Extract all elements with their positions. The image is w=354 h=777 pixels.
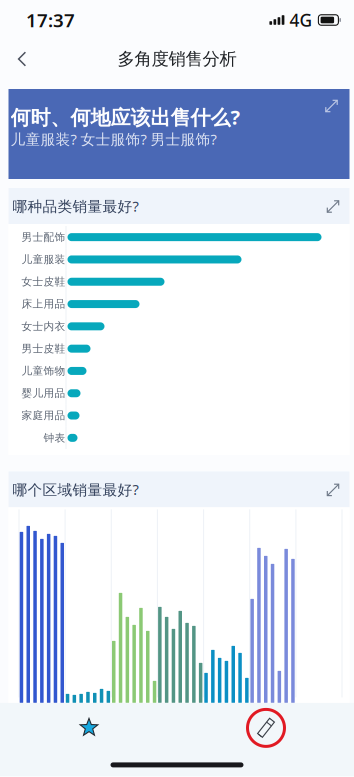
staticText: 家庭用品	[21, 409, 65, 422]
button[interactable]: Back	[0, 40, 44, 78]
button[interactable]: Edit	[178, 706, 354, 750]
staticText: 何时、何地应该出售什么?	[10, 104, 240, 130]
staticText: 多角度销售分析	[117, 48, 236, 70]
button[interactable]: Expand chart	[313, 89, 349, 123]
staticText: 男士配饰	[21, 231, 65, 244]
staticText: 床上用品	[21, 297, 65, 311]
staticText: 婴儿用品	[21, 387, 65, 400]
staticText: 哪种品类销量最好?	[12, 196, 138, 216]
staticText: 钟表	[43, 431, 65, 444]
staticText: 4G	[289, 8, 312, 31]
staticText: 儿童饰物	[21, 364, 65, 377]
staticText: 男士皮鞋	[21, 342, 65, 355]
button[interactable]: Expand 哪种品类销量最好?	[315, 188, 349, 224]
staticText: 儿童服装? 女士服饰? 男士服饰?	[10, 129, 216, 149]
staticText: 哪个区域销量最好?	[12, 480, 138, 499]
staticText: 17:37	[26, 8, 75, 32]
button[interactable]: Expand 哪个区域销量最好?	[315, 471, 349, 507]
button[interactable]: Favorites	[0, 706, 178, 750]
staticText: 女士皮鞋	[21, 275, 65, 288]
staticText: 女士内衣	[21, 320, 65, 333]
staticText: 儿童服装	[21, 253, 65, 266]
